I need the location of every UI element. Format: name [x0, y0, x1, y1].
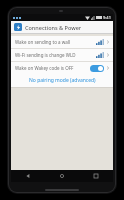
staticText: Connections & Power	[25, 24, 82, 31]
other: Signal strength	[96, 52, 104, 58]
button[interactable]: Back	[11, 170, 45, 182]
button[interactable]: Wi-Fi sending is change WLD	[11, 49, 113, 61]
staticText: 9:41	[103, 15, 111, 20]
button[interactable]: Wake on Wakey code is OFF	[11, 62, 113, 74]
button[interactable]: Recent apps	[79, 170, 113, 182]
staticText: No pairing mode (advanced)	[29, 77, 96, 84]
button[interactable]: Connections & Power	[11, 21, 113, 33]
button[interactable]: No pairing mode (advanced)	[11, 74, 113, 87]
staticText: Wi-Fi sending is change WLD	[15, 52, 96, 58]
staticText: Wake on sending to a wall	[15, 39, 96, 45]
button[interactable]: Wake on sending to a wall	[11, 36, 113, 48]
other: Open	[106, 39, 110, 45]
button[interactable]: Home	[45, 170, 79, 182]
other: Open	[106, 65, 110, 71]
other: Open	[106, 52, 110, 58]
staticText: Wake on Wakey code is OFF	[15, 65, 90, 71]
button[interactable]: Toggle on	[90, 65, 104, 72]
other: Signal strength	[96, 39, 104, 45]
